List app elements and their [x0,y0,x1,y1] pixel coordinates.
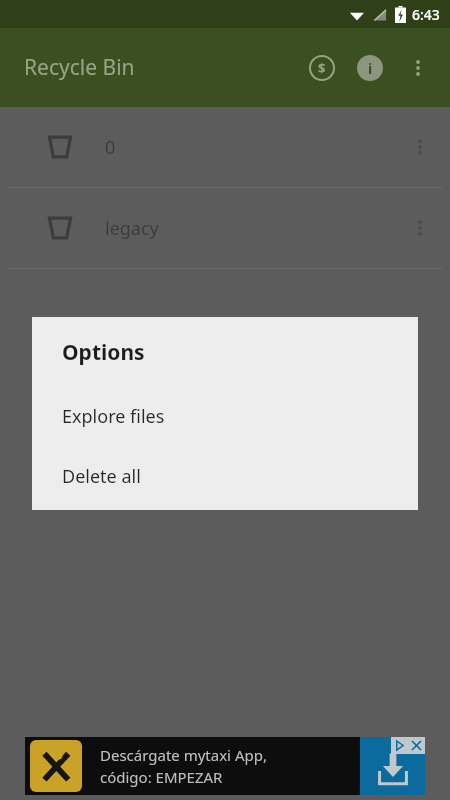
button[interactable]: Install app [360,737,425,795]
staticText: Descárgate mytaxi App, [100,745,267,765]
staticText: Explore files [62,404,165,429]
staticText: Recycle Bin [24,53,135,82]
button[interactable]: More options [394,44,442,92]
staticText: i [368,59,373,78]
button[interactable]: Delete all [32,446,418,506]
staticText: $ [318,59,326,77]
staticText: 0 [105,135,116,160]
button[interactable]: Explore files [32,386,418,446]
staticText: legacy [105,216,159,241]
button[interactable]: Info [346,44,394,92]
button[interactable]: legacy [0,188,450,268]
staticText: Options [62,338,145,367]
staticText: Delete all [62,464,141,489]
staticText: 6:43 [412,5,440,24]
button[interactable]: Remove ads [298,44,346,92]
staticText: código: EMPEZAR [100,767,223,787]
button[interactable]: Descárgate mytaxi App, [25,737,425,795]
